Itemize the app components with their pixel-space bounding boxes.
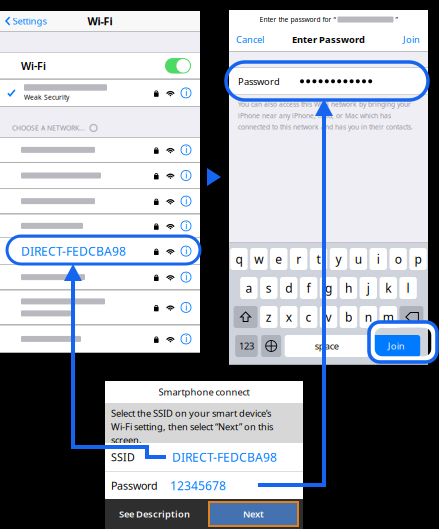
button[interactable]: c: [300, 306, 317, 328]
button[interactable]: b: [340, 306, 357, 328]
staticText: i: [185, 244, 187, 257]
staticText: SSID: [111, 450, 135, 464]
staticText: See Description: [119, 508, 190, 520]
button[interactable]: k: [379, 277, 397, 299]
button[interactable]: Wi-Fi network: [0, 137, 200, 162]
button[interactable]: 123: [235, 335, 258, 357]
staticText: i: [185, 86, 187, 99]
button[interactable]: t: [310, 248, 327, 270]
button[interactable]: See Description: [105, 499, 204, 529]
button[interactable]: space: [285, 335, 369, 357]
staticText: 123: [239, 340, 254, 352]
staticText: t: [317, 251, 321, 267]
staticText: Weak Security: [24, 93, 69, 102]
staticText: i: [377, 251, 380, 267]
staticText: Join: [403, 33, 420, 46]
button[interactable]: Join: [403, 28, 428, 50]
staticText: screen.: [111, 434, 142, 446]
button[interactable]: i: [370, 248, 387, 270]
button[interactable]: Delete: [399, 306, 423, 328]
staticText: m: [383, 309, 394, 325]
button[interactable]: Shift: [234, 306, 258, 328]
button[interactable]: w: [250, 248, 268, 270]
staticText: x: [286, 309, 292, 325]
staticText: d: [285, 280, 292, 296]
staticText: i: [185, 143, 187, 156]
button[interactable]: Wi-Fi on: [165, 58, 191, 73]
button[interactable]: s: [260, 277, 277, 299]
staticText: connected to this network and has you in…: [238, 122, 413, 131]
button[interactable]: l: [399, 277, 417, 299]
staticText: Cancel: [236, 33, 264, 46]
button[interactable]: z: [260, 306, 277, 328]
button[interactable]: Next: [204, 499, 303, 529]
staticText: o: [395, 251, 402, 267]
button[interactable]: e: [270, 248, 287, 270]
staticText: i: [185, 301, 187, 313]
button[interactable]: Wi-Fi network: [0, 290, 200, 325]
button[interactable]: Join: [372, 335, 420, 357]
staticText: v: [325, 309, 331, 325]
staticText: Next: [243, 508, 264, 520]
staticText: a: [245, 280, 252, 296]
button[interactable]: f: [300, 277, 317, 299]
staticText: DIRECT-FEDCBA98: [21, 243, 126, 259]
staticText: Settings: [13, 15, 47, 27]
staticText: Enter the password for “: [259, 15, 335, 24]
staticText: w: [254, 251, 263, 267]
button[interactable]: n: [360, 306, 377, 328]
staticText: Wi-Fi setting, then select “Next” on thi…: [111, 420, 273, 433]
staticText: i: [185, 270, 187, 283]
button[interactable]: Wi-Fi network: [0, 189, 200, 214]
button[interactable]: Wi-Fi network: [0, 325, 200, 353]
button[interactable]: o: [389, 248, 407, 270]
button[interactable]: r: [290, 248, 307, 270]
staticText: z: [266, 309, 272, 325]
staticText: ”: [395, 15, 397, 24]
staticText: DIRECT-FEDCBA98: [172, 449, 277, 465]
staticText: p: [415, 251, 422, 267]
staticText: Password: [111, 478, 158, 493]
button[interactable]: p: [409, 248, 427, 270]
staticText: f: [307, 280, 311, 296]
button[interactable]: j: [360, 277, 377, 299]
staticText: s: [266, 280, 272, 296]
button[interactable]: Change keyboard: [261, 335, 281, 357]
staticText: u: [355, 251, 362, 267]
button[interactable]: h: [340, 277, 357, 299]
staticText: j: [367, 280, 370, 296]
button[interactable]: v: [320, 306, 337, 328]
staticText: y: [335, 251, 341, 267]
staticText: Wi-Fi: [21, 59, 46, 73]
button[interactable]: Wi-Fi network: [0, 214, 200, 238]
staticText: space: [315, 340, 339, 352]
staticText: c: [306, 309, 312, 325]
button[interactable]: Cancel: [229, 28, 264, 50]
staticText: i: [185, 194, 187, 207]
staticText: Select the SSID on your smart device’s: [111, 407, 271, 419]
button[interactable]: q: [230, 248, 248, 270]
button[interactable]: Wi-Fi network: [0, 163, 200, 188]
staticText: Wi-Fi: [87, 14, 112, 28]
button[interactable]: x: [280, 306, 297, 328]
button[interactable]: a: [240, 277, 258, 299]
staticText: iPhone near any iPhone, iPad, or Mac whi…: [238, 111, 391, 120]
staticText: i: [185, 332, 187, 345]
staticText: Smartphone connect: [158, 386, 249, 398]
staticText: CHOOSE A NETWORK...: [12, 123, 85, 132]
button[interactable]: Wi-Fi network: [0, 265, 200, 290]
staticText: Password: [238, 75, 280, 87]
staticText: k: [385, 280, 391, 296]
button[interactable]: m: [379, 306, 397, 328]
button[interactable]: DIRECT-FEDCBA98: [0, 238, 200, 265]
button[interactable]: g: [320, 277, 337, 299]
staticText: You can also access this Wi-Fi network b…: [238, 100, 411, 109]
button[interactable]: Settings: [0, 11, 47, 31]
staticText: g: [325, 280, 332, 296]
button[interactable]: y: [330, 248, 347, 270]
button[interactable]: u: [350, 248, 367, 270]
staticText: 12345678: [170, 477, 226, 493]
staticText: r: [296, 251, 301, 267]
button[interactable]: d: [280, 277, 297, 299]
staticText: i: [185, 169, 187, 181]
